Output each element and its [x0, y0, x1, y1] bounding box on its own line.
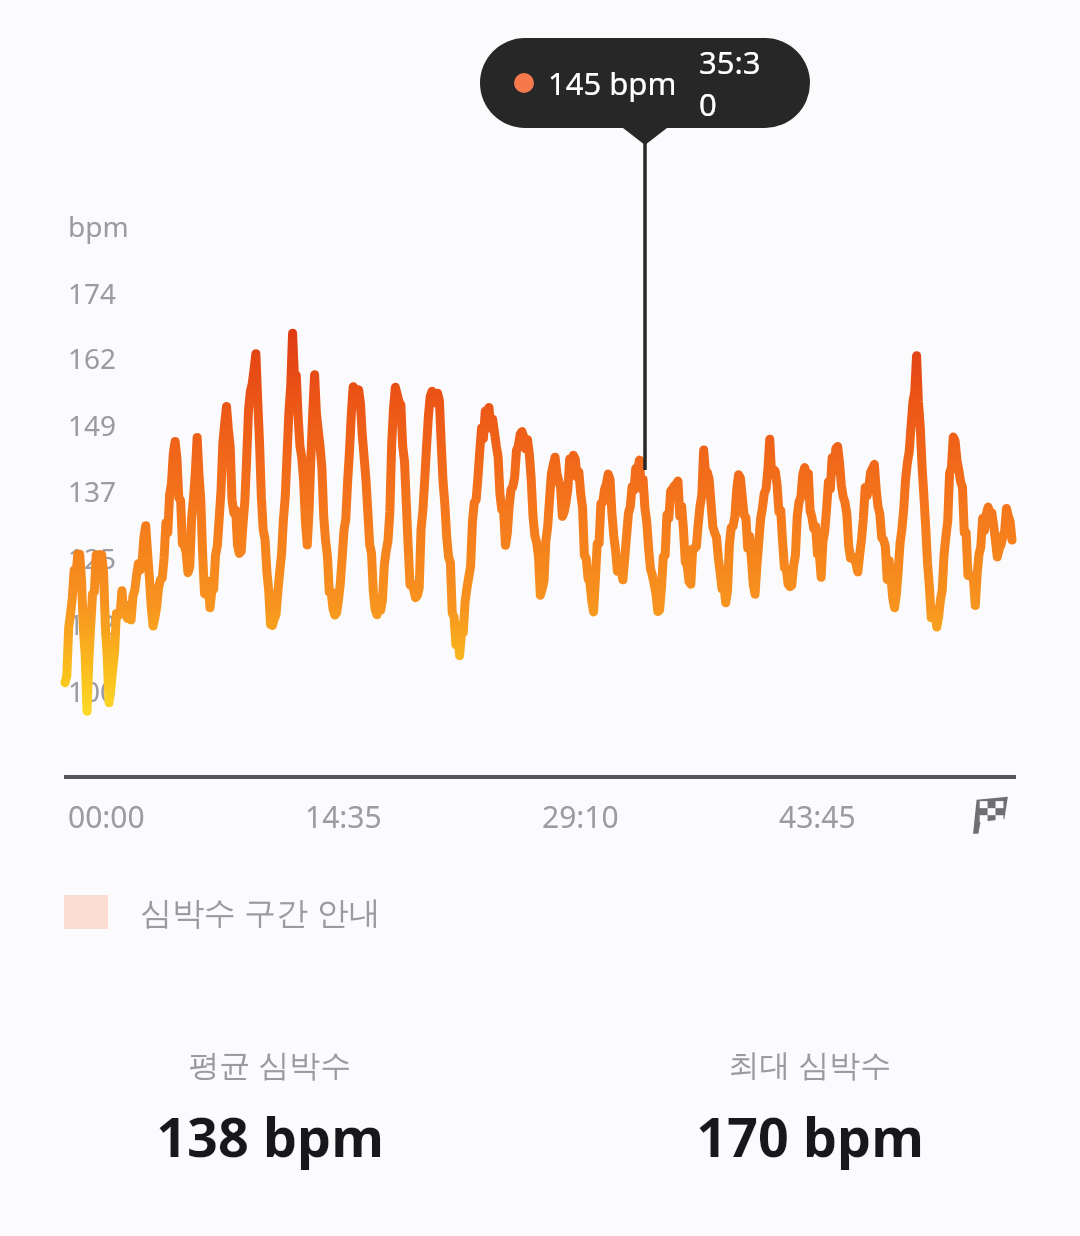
staticText: bpm	[68, 207, 129, 245]
button[interactable]: 145 bpm	[480, 38, 810, 128]
staticText: 29:10	[542, 796, 619, 837]
staticText: 00:00	[68, 796, 145, 837]
staticText: 43:45	[779, 796, 856, 837]
staticText: 100	[68, 672, 117, 710]
staticText: 심박수 구간 안내	[140, 890, 381, 934]
button[interactable]: Finish	[962, 783, 1022, 843]
button[interactable]: 심박수 구간 안내	[64, 886, 397, 938]
button[interactable]: 최대 심박수	[540, 1035, 1080, 1181]
staticText: 14:35	[305, 796, 382, 837]
staticText: 평균 심박수	[188, 1043, 352, 1085]
button[interactable]: 평균 심박수	[0, 1035, 540, 1181]
staticText: 125	[68, 539, 117, 577]
staticText: 최대 심박수	[728, 1043, 892, 1085]
staticText: 149	[68, 406, 117, 444]
staticText: 170 bpm	[696, 1099, 924, 1173]
staticText: 145 bpm	[548, 62, 677, 104]
staticText: 174	[68, 274, 117, 312]
staticText: 137	[68, 472, 117, 510]
staticText: 138 bpm	[156, 1099, 384, 1173]
staticText: 162	[68, 339, 117, 377]
staticText: 112	[68, 605, 117, 643]
staticText: 35:30	[699, 41, 776, 125]
